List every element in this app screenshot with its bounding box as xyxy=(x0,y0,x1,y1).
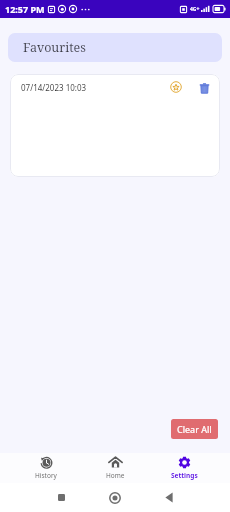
staticText: Clear All xyxy=(177,423,212,435)
button[interactable]: Favourites xyxy=(8,33,222,62)
staticText: 4G+ xyxy=(190,6,200,13)
button[interactable]: Delete xyxy=(193,76,215,98)
button[interactable]: Home xyxy=(81,453,150,483)
staticText: 07/14/2023 10:03 xyxy=(21,82,87,93)
staticText: Settings xyxy=(171,471,198,480)
button[interactable]: Settings xyxy=(150,453,219,483)
button[interactable]: Favourite xyxy=(165,76,187,98)
button[interactable]: Home xyxy=(88,483,142,512)
button[interactable]: Back xyxy=(142,483,196,512)
staticText: History xyxy=(35,471,57,480)
staticText: Home xyxy=(106,471,125,480)
staticText: 12:57 PM xyxy=(5,3,45,15)
button[interactable]: 07/14/2023 10:03 xyxy=(10,74,220,100)
button[interactable]: Recents xyxy=(34,483,88,512)
button[interactable]: Clear All xyxy=(171,419,218,439)
button[interactable]: History xyxy=(11,453,81,483)
staticText: Favourites xyxy=(23,39,86,56)
